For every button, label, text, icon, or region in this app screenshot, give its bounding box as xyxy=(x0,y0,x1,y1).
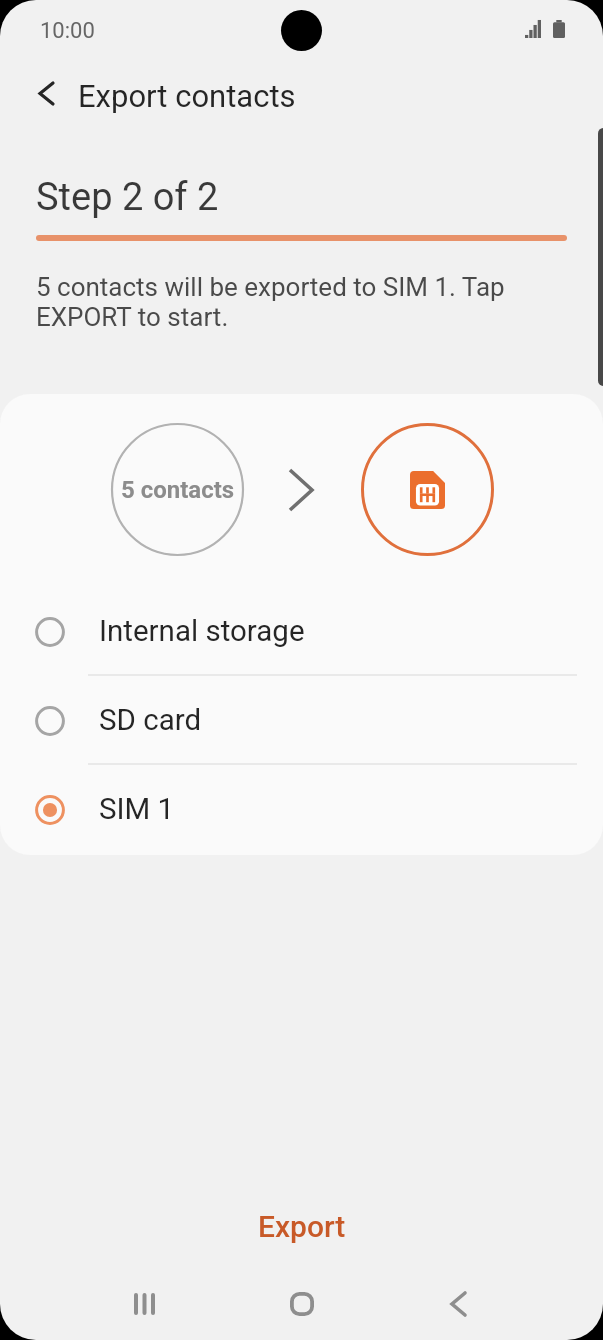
button[interactable]: Navigate up xyxy=(18,65,74,121)
staticText: SD card xyxy=(99,703,202,738)
button[interactable]: SD card xyxy=(0,676,603,765)
staticText: SIM 1 xyxy=(99,792,175,827)
button[interactable]: Back xyxy=(380,1268,537,1340)
button[interactable]: Internal storage xyxy=(0,587,603,676)
staticText: 5 contacts xyxy=(121,476,235,504)
button[interactable]: SIM 1 xyxy=(0,765,603,854)
staticText: Export contacts xyxy=(78,78,296,114)
staticText: Step 2 of 2 xyxy=(36,175,219,220)
button[interactable]: Recent apps xyxy=(66,1268,223,1340)
staticText: 5 contacts will be exported to SIM 1. Ta… xyxy=(36,272,505,332)
button[interactable]: Export xyxy=(0,1184,603,1268)
staticText: Export xyxy=(258,1209,346,1244)
button[interactable]: Home xyxy=(223,1268,380,1340)
staticText: Internal storage xyxy=(99,614,305,649)
staticText: 10:00 xyxy=(40,18,95,44)
